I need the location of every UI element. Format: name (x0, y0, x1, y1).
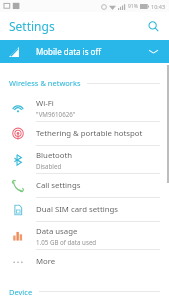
button[interactable]: More (0, 250, 169, 273)
button[interactable]: Search (143, 16, 163, 36)
button[interactable]: Wi-Fi (0, 94, 169, 122)
button[interactable]: Tethering & portable hotspot (0, 122, 169, 146)
button[interactable]: Mobile data is off (0, 40, 169, 63)
staticText: 1.05 GB of data used (36, 238, 97, 246)
staticText: Bluetooth (36, 150, 73, 161)
staticText: 10:43 (151, 3, 166, 10)
button[interactable]: Dual SIM card settings (0, 198, 169, 222)
button[interactable]: Call settings (0, 174, 169, 198)
staticText: Call settings (36, 180, 81, 191)
staticText: Wi-Fi (36, 98, 54, 109)
staticText: Tethering & portable hotspot (36, 128, 143, 139)
button[interactable]: Data usage (0, 222, 169, 250)
staticText: "VM9610626" (36, 110, 76, 118)
staticText: Disabled (36, 162, 62, 170)
staticText: Wireless & networks (9, 78, 81, 88)
staticText: More (36, 256, 56, 267)
staticText: Mobile data is off (36, 46, 101, 57)
button[interactable]: Bluetooth (0, 146, 169, 174)
staticText: 91% (128, 3, 138, 10)
staticText: Settings (9, 18, 55, 34)
staticText: Dual SIM card settings (36, 204, 119, 215)
staticText: Data usage (36, 226, 78, 237)
staticText: Device (9, 287, 33, 297)
